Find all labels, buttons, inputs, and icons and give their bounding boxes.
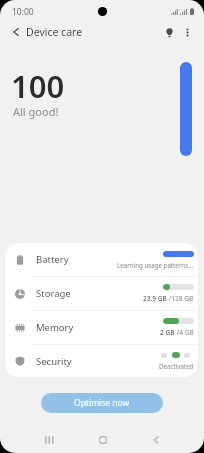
button[interactable]: Security — [5, 345, 198, 377]
button[interactable]: Navigate up — [4, 20, 28, 44]
staticText: Learning usage patterns... — [117, 261, 194, 269]
staticText: 100 — [11, 65, 65, 107]
staticText: Battery — [36, 253, 69, 266]
staticText: 23.9 GB — [143, 294, 167, 303]
button[interactable]: Recent apps — [31, 426, 66, 453]
button[interactable]: Tips — [158, 21, 180, 43]
button[interactable]: More options — [176, 21, 198, 43]
staticText: 10:00 — [12, 6, 34, 18]
button[interactable]: Memory — [5, 311, 198, 344]
button[interactable]: Battery — [5, 243, 198, 276]
staticText: 2 GB — [160, 328, 175, 337]
staticText: Deactivated — [159, 362, 194, 370]
button[interactable]: Optimise now — [41, 393, 163, 413]
button[interactable]: Home — [85, 426, 120, 453]
button[interactable]: Storage — [5, 277, 198, 310]
staticText: Device care — [26, 25, 83, 39]
staticText: /4 GB — [175, 328, 194, 337]
staticText: Storage — [36, 287, 71, 300]
staticText: Optimise now — [74, 397, 130, 409]
staticText: Security — [36, 355, 72, 368]
button[interactable]: Back — [138, 426, 173, 453]
staticText: All good! — [13, 104, 59, 119]
staticText: Memory — [36, 321, 74, 334]
staticText: /128 GB — [167, 294, 194, 303]
